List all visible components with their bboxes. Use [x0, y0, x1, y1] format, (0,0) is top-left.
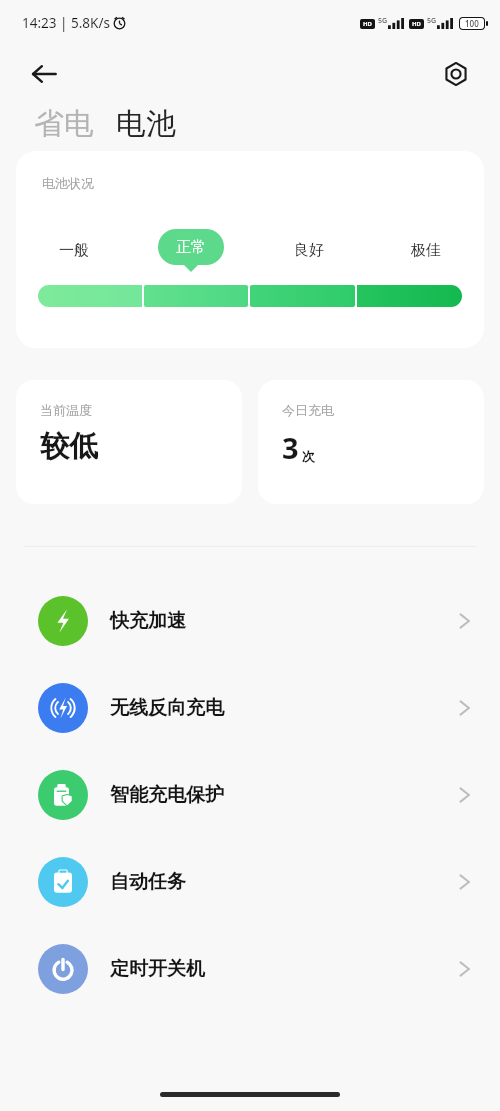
button[interactable]: 无线反向充电 [0, 664, 500, 751]
staticText: 正常 [176, 238, 206, 257]
staticText: 电池 [116, 105, 176, 143]
button[interactable]: 智能充电保护 [0, 751, 500, 838]
button[interactable]: 当前温度 [16, 380, 242, 504]
button[interactable]: Back [20, 50, 68, 98]
button[interactable]: 定时开关机 [0, 925, 500, 1012]
staticText: 较低 [40, 428, 98, 465]
staticText: HD [412, 20, 421, 28]
button[interactable]: Settings [434, 52, 478, 96]
staticText: 次 [302, 448, 315, 464]
staticText: 当前温度 [40, 402, 92, 418]
button[interactable]: 省电 [34, 105, 94, 143]
button[interactable]: 电池 [116, 105, 176, 143]
staticText: 快充加速 [110, 609, 458, 633]
staticText: 5G [427, 16, 437, 26]
staticText: 极佳 [411, 241, 441, 260]
button[interactable]: 良好 [294, 241, 324, 260]
button[interactable]: 电池状况 [16, 151, 484, 348]
button[interactable]: 快充加速 [0, 577, 500, 664]
button[interactable]: 自动任务 [0, 838, 500, 925]
staticText: 无线反向充电 [110, 696, 458, 720]
button[interactable]: 正常 [158, 229, 224, 265]
staticText: 3 [282, 428, 299, 467]
button[interactable]: 极佳 [411, 241, 441, 260]
staticText: 自动任务 [110, 870, 458, 894]
button[interactable]: 今日充电 [258, 380, 484, 504]
staticText: 智能充电保护 [110, 783, 458, 807]
staticText: HD [363, 20, 372, 28]
staticText: 电池状况 [42, 175, 94, 191]
button[interactable]: 一般 [59, 241, 89, 260]
staticText: 5G [378, 16, 388, 26]
staticText: 一般 [59, 241, 89, 260]
staticText: 良好 [294, 241, 324, 260]
staticText: 14:23 | 5.8K/s [22, 14, 110, 32]
staticText: 省电 [34, 105, 94, 143]
staticText: 100 [465, 18, 479, 29]
staticText: 今日充电 [282, 402, 334, 418]
staticText: 定时开关机 [110, 957, 458, 981]
